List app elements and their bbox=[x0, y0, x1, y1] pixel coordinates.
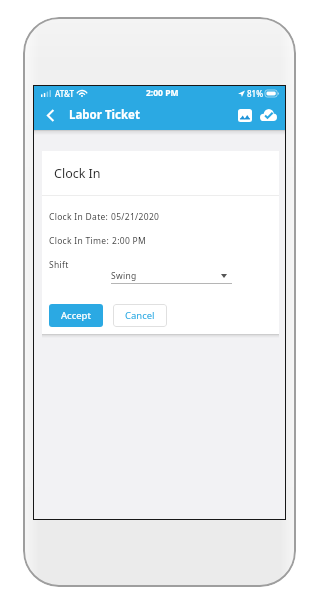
button[interactable]: Accept bbox=[49, 304, 103, 327]
staticText: AT&T bbox=[55, 88, 74, 99]
staticText: Accept bbox=[61, 309, 91, 322]
staticText: 81% bbox=[247, 88, 263, 99]
button[interactable]: Sync to cloud bbox=[257, 103, 280, 127]
button[interactable]: Cancel bbox=[113, 304, 167, 327]
staticText: Clock In Time: bbox=[49, 235, 110, 247]
staticText: Labor Ticket bbox=[69, 107, 140, 123]
button[interactable]: Back bbox=[43, 105, 57, 125]
staticText: 05/21/2020 bbox=[111, 211, 160, 223]
staticText: 2:00 PM bbox=[112, 235, 147, 247]
staticText: Clock In Date: bbox=[49, 211, 109, 223]
staticText: Shift bbox=[49, 259, 69, 271]
staticText: 2:00 PM bbox=[146, 87, 179, 99]
staticText: Clock In bbox=[54, 165, 101, 182]
staticText: Cancel bbox=[125, 309, 155, 322]
button[interactable]: Photo bbox=[235, 103, 255, 127]
staticText: Swing bbox=[111, 270, 137, 282]
